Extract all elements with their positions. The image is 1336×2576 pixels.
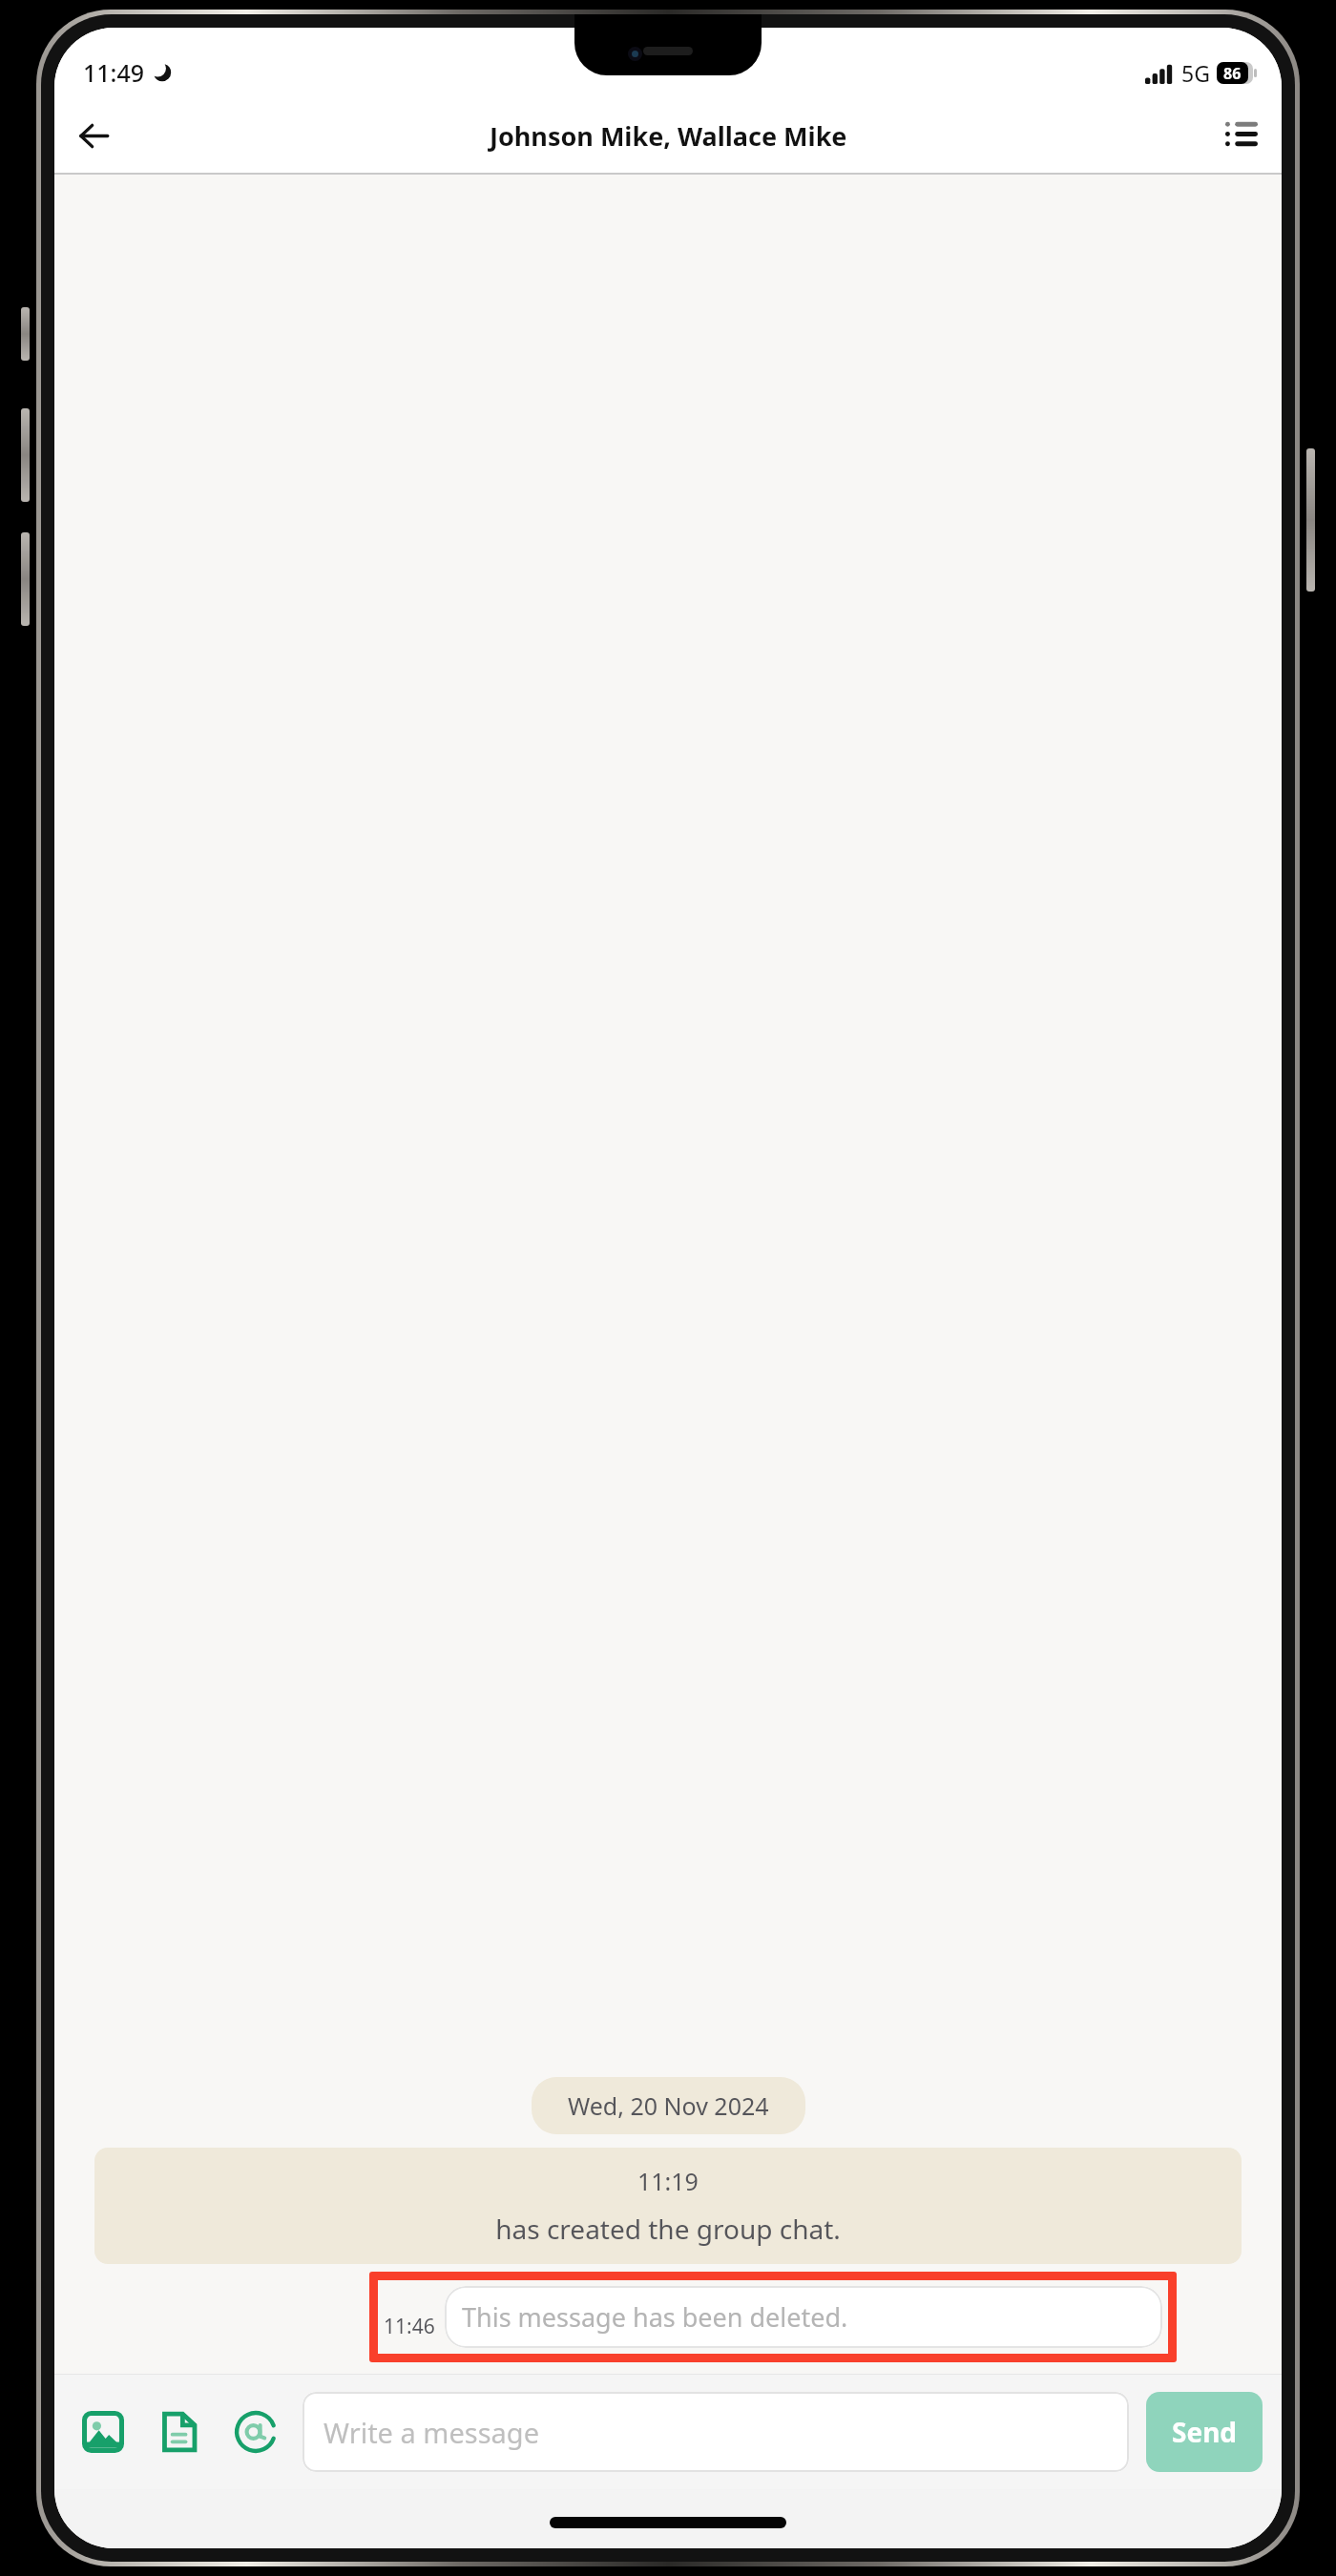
staticText: Send [1172, 2414, 1238, 2450]
button[interactable]: Menu [1215, 109, 1268, 162]
button[interactable]: Wed, 20 Nov 2024 [532, 2077, 805, 2134]
button[interactable]: Attach document [150, 2402, 209, 2462]
staticText: 11:49 [83, 56, 145, 89]
staticText: This message has been deleted. [462, 2299, 848, 2335]
staticText: Wed, 20 Nov 2024 [568, 2089, 769, 2122]
staticText: 5G [1181, 58, 1210, 88]
button[interactable]: 11:19 [94, 2148, 1242, 2264]
staticText: 11:46 [384, 2313, 435, 2340]
button[interactable]: Back [66, 108, 121, 163]
button[interactable]: Attach image [73, 2402, 133, 2462]
staticText: Write a message [324, 2414, 540, 2451]
staticText: 11:19 [637, 2165, 699, 2197]
staticText: has created the group chat. [495, 2211, 841, 2247]
button[interactable]: Mention [226, 2402, 285, 2462]
staticText: Johnson Mike, Wallace Mike [490, 118, 847, 154]
button[interactable]: This message has been deleted. [445, 2286, 1162, 2348]
button[interactable]: Send [1146, 2392, 1263, 2472]
staticText: 86 [1223, 63, 1242, 84]
button[interactable]: Write a message [303, 2392, 1129, 2472]
